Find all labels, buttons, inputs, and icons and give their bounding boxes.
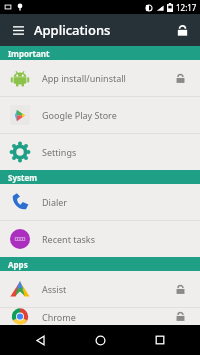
button[interactable]: Google Play Store [0, 97, 200, 133]
button[interactable]: Recent apps [140, 325, 180, 355]
staticText: Important [8, 48, 50, 59]
staticText: Apps [8, 259, 28, 270]
staticText: System [8, 172, 38, 183]
button[interactable]: Open navigation menu [6, 18, 30, 42]
button[interactable]: Recent tasks [0, 221, 200, 257]
staticText: Settings [42, 146, 170, 158]
staticText: Applications [34, 21, 111, 39]
staticText: App install/uninstall [42, 72, 170, 84]
button[interactable]: Assist [0, 271, 200, 307]
button[interactable]: Dialer [0, 184, 200, 220]
button[interactable]: Back [20, 325, 60, 355]
staticText: Dialer [42, 196, 170, 208]
button[interactable]: Home [80, 325, 120, 355]
staticText: Assist [42, 283, 170, 295]
staticText: Chrome [42, 311, 170, 323]
staticText: Google Play Store [42, 109, 170, 121]
button[interactable]: App install/uninstall [0, 60, 200, 96]
button[interactable]: Settings [0, 134, 200, 170]
staticText: Recent tasks [42, 233, 170, 245]
button[interactable]: Chrome [0, 308, 200, 325]
button[interactable]: Lock [170, 18, 194, 42]
staticText: 12:17 [176, 2, 197, 13]
